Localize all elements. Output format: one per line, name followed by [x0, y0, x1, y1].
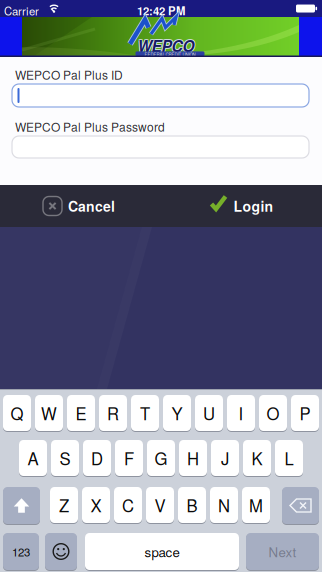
button[interactable]: E: [67, 395, 95, 432]
button[interactable]: Shift: [3, 487, 40, 525]
staticText: V: [154, 493, 165, 517]
staticText: Next: [268, 542, 296, 561]
button[interactable]: O: [259, 395, 287, 432]
staticText: Login: [233, 196, 273, 216]
button[interactable]: J: [211, 440, 239, 477]
staticText: Z: [59, 493, 69, 517]
button[interactable]: R: [99, 395, 127, 432]
button[interactable]: G: [147, 440, 175, 477]
staticText: Carrier: [4, 2, 39, 19]
staticText: WEPCO Pal Plus Password: [15, 118, 165, 135]
staticText: 123: [12, 543, 30, 560]
staticText: WEPCO: [137, 35, 194, 57]
staticText: G: [154, 446, 167, 470]
button[interactable]: space: [85, 533, 239, 571]
staticText: M: [249, 493, 263, 517]
button[interactable]: Cancel: [0, 185, 161, 227]
staticText: Cancel: [68, 196, 115, 216]
button[interactable]: Z: [50, 487, 78, 524]
button[interactable]: K: [243, 440, 271, 477]
staticText: O: [266, 401, 279, 425]
staticText: W: [41, 401, 57, 425]
staticText: T: [140, 401, 150, 425]
button[interactable]: Delete: [282, 487, 319, 525]
staticText: P: [299, 401, 310, 425]
staticText: WEPCO: [137, 35, 194, 57]
button[interactable]: L: [275, 440, 303, 477]
staticText: H: [187, 446, 199, 470]
staticText: R: [107, 401, 119, 425]
staticText: WEPCO Pal Plus ID: [15, 66, 123, 83]
button[interactable]: Q: [3, 395, 31, 432]
staticText: L: [284, 446, 293, 470]
staticText: 12:42 PM: [137, 2, 185, 19]
staticText: E: [75, 401, 86, 425]
staticText: D: [91, 446, 103, 470]
button[interactable]: C: [114, 487, 142, 524]
button[interactable]: U: [195, 395, 223, 432]
staticText: Y: [171, 401, 182, 425]
staticText: space: [144, 542, 179, 561]
staticText: J: [221, 446, 229, 470]
staticText: C: [122, 493, 134, 517]
button[interactable]: V: [146, 487, 174, 524]
button[interactable]: I: [227, 395, 255, 432]
button[interactable]: Next: [246, 533, 319, 571]
button[interactable]: Numbers: [3, 533, 39, 571]
staticText: S: [59, 446, 70, 470]
staticText: X: [90, 493, 101, 517]
staticText: K: [251, 446, 262, 470]
staticText: B: [186, 493, 197, 517]
staticText: FEDERAL CREDIT UNION: [144, 52, 195, 58]
button[interactable]: H: [179, 440, 207, 477]
staticText: WEPCO: [138, 34, 195, 56]
button[interactable]: Emoji: [45, 533, 77, 571]
button[interactable]: X: [82, 487, 110, 524]
button[interactable]: M: [242, 487, 270, 524]
staticText: F: [124, 446, 134, 470]
button[interactable]: T: [131, 395, 159, 432]
button[interactable]: Login: [155, 185, 316, 227]
button[interactable]: F: [115, 440, 143, 477]
staticText: Q: [10, 401, 23, 425]
button[interactable]: B: [178, 487, 206, 524]
staticText: N: [218, 493, 230, 517]
staticText: A: [27, 446, 38, 470]
button[interactable]: A: [19, 440, 47, 477]
button[interactable]: S: [51, 440, 79, 477]
staticText: U: [203, 401, 215, 425]
button[interactable]: N: [210, 487, 238, 524]
staticText: I: [238, 401, 243, 425]
button[interactable]: W: [35, 395, 63, 432]
staticText: WEPCO: [137, 34, 194, 56]
button[interactable]: P: [291, 395, 319, 432]
button[interactable]: Y: [163, 395, 191, 432]
staticText: WEPCO: [138, 35, 195, 57]
button[interactable]: D: [83, 440, 111, 477]
